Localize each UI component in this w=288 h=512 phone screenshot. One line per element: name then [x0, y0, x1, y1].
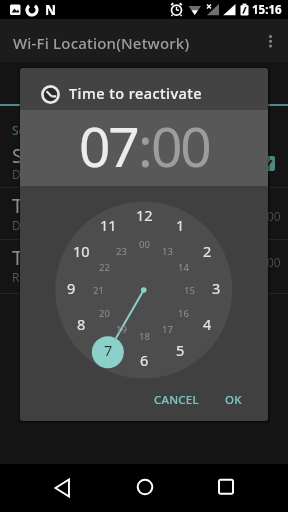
- button[interactable]: [122, 466, 168, 510]
- staticText: 17: [162, 323, 173, 335]
- staticText: 9: [67, 278, 76, 296]
- staticText: 3: [212, 278, 221, 296]
- staticText: 1: [176, 215, 185, 233]
- staticText: 6: [140, 350, 149, 368]
- staticText: 19: [116, 323, 127, 335]
- button[interactable]: [40, 466, 86, 510]
- staticText: 14: [178, 261, 189, 273]
- staticText: OK: [225, 392, 242, 408]
- staticText: 13: [162, 245, 173, 257]
- staticText: 7: [104, 340, 113, 358]
- button[interactable]: [203, 466, 249, 510]
- staticText: 07: [79, 108, 138, 183]
- staticText: 15: [184, 284, 195, 296]
- staticText: 12: [136, 205, 153, 223]
- staticText: Service enabled: [12, 142, 157, 166]
- staticText: N: [45, 1, 56, 15]
- staticText: 07:00: [250, 254, 280, 267]
- staticText: Time to reactivate: [12, 244, 176, 268]
- button[interactable]: CANCEL: [146, 385, 206, 415]
- staticText: Time to reactivate: [69, 83, 203, 100]
- staticText: 4: [203, 314, 212, 332]
- staticText: 07:00: [250, 208, 280, 221]
- staticText: 23: [116, 245, 127, 257]
- staticText: Deactivate service at: [12, 217, 128, 231]
- staticText: Reactivate service at: [12, 269, 127, 283]
- staticText: 00: [139, 238, 150, 250]
- staticText: 18: [139, 330, 150, 342]
- staticText: 22: [99, 261, 110, 273]
- staticText: 16: [178, 307, 189, 319]
- staticText: 11: [100, 215, 117, 233]
- staticText: Wi-Fi Location(Network): [13, 33, 190, 53]
- staticText: :: [138, 108, 151, 183]
- staticText: 15:16: [252, 2, 282, 17]
- staticText: 00: [151, 108, 210, 183]
- staticText: Disabled by timer: [12, 166, 111, 180]
- button[interactable]: [258, 28, 284, 54]
- button[interactable]: OK: [208, 385, 258, 415]
- staticText: Time to deactivate: [12, 192, 181, 216]
- staticText: CANCEL: [154, 392, 199, 408]
- staticText: 10: [73, 241, 90, 259]
- staticText: 21: [93, 284, 104, 296]
- staticText: Service control: [12, 122, 97, 136]
- staticText: 2: [203, 241, 212, 259]
- staticText: 8: [77, 314, 86, 332]
- staticText: 20: [99, 307, 110, 319]
- staticText: 5: [176, 340, 185, 358]
